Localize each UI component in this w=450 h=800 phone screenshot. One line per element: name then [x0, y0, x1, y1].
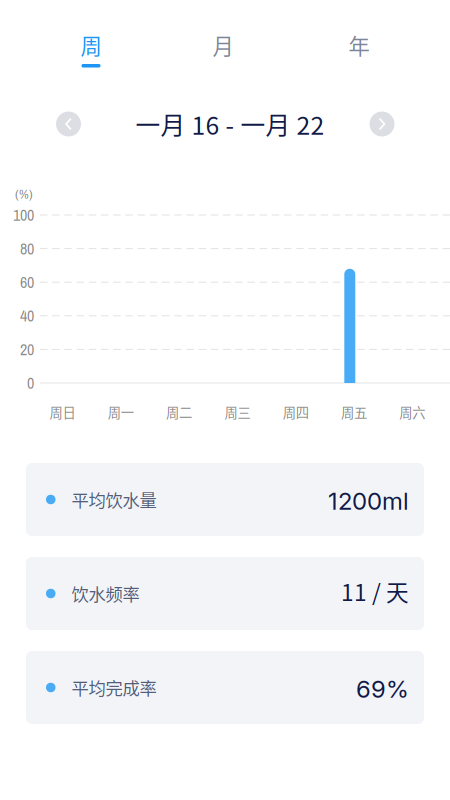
button[interactable]: 年 — [314, 33, 404, 57]
staticText: 周 — [80, 30, 101, 60]
staticText: 80 — [20, 238, 34, 259]
staticText: 周三 — [224, 402, 250, 422]
staticText: 周日 — [49, 402, 75, 422]
staticText: 40 — [20, 305, 34, 327]
staticText: 1200ml — [328, 486, 409, 515]
staticText: 饮水频率 — [71, 581, 139, 606]
staticText: 周四 — [283, 402, 309, 422]
staticText: 20 — [20, 339, 34, 360]
staticText: 周一 — [108, 402, 134, 422]
staticText: 11 / 天 — [341, 575, 409, 607]
button[interactable]: Previous week — [56, 111, 81, 136]
button[interactable]: 周 — [46, 33, 136, 85]
staticText: 平均饮水量 — [71, 487, 156, 512]
staticText: 60 — [20, 271, 34, 293]
button[interactable]: 平均饮水量 — [26, 463, 424, 536]
staticText: 100 — [13, 204, 34, 226]
button[interactable]: Next week — [369, 111, 394, 136]
staticText: 0 — [27, 372, 34, 394]
staticText: 周六 — [399, 402, 425, 422]
button[interactable]: 饮水频率 — [26, 557, 424, 630]
staticText: 周五 — [341, 402, 367, 422]
staticText: 一月 16 - 一月 22 — [135, 106, 324, 142]
staticText: 69% — [356, 674, 409, 703]
staticText: (%) — [15, 185, 33, 203]
button[interactable]: 月 — [178, 33, 268, 57]
staticText: 年 — [348, 30, 369, 60]
staticText: 月 — [212, 30, 233, 60]
button[interactable]: 平均完成率 — [26, 651, 424, 724]
staticText: 周二 — [166, 402, 192, 422]
staticText: 平均完成率 — [71, 675, 156, 700]
